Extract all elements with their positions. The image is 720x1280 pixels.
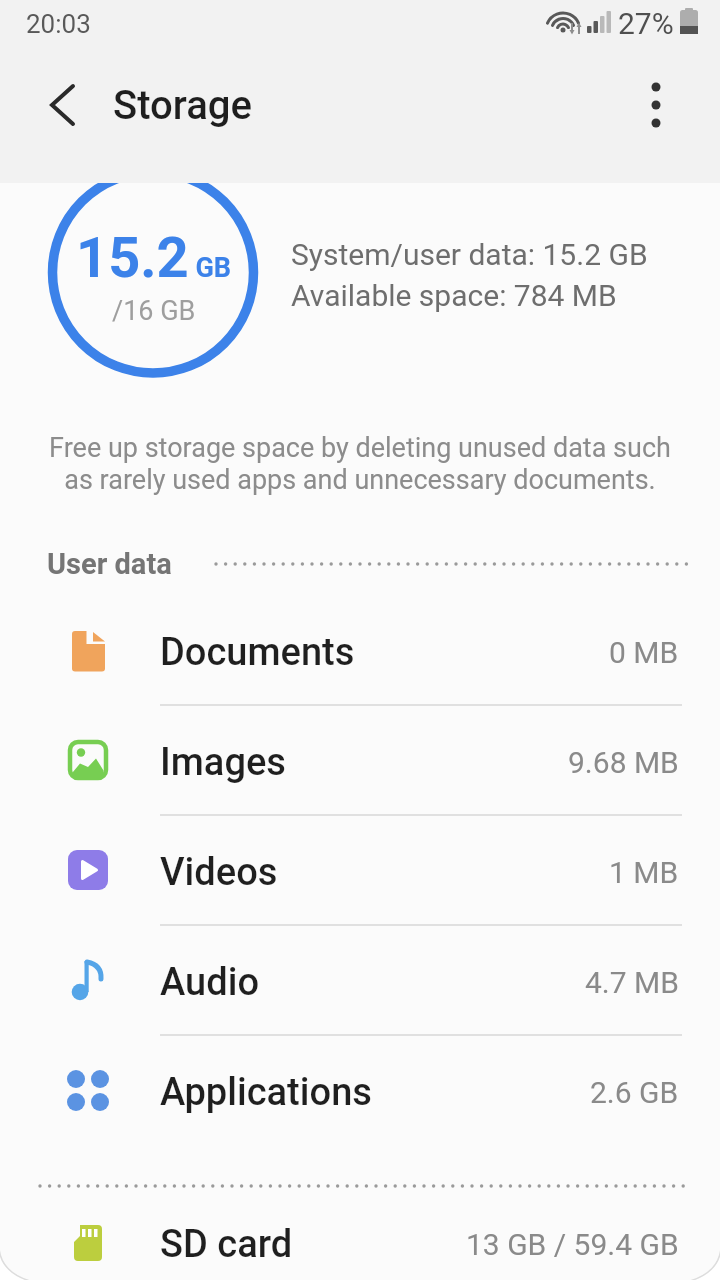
staticText: Free up storage space by deleting unused… [49, 432, 671, 495]
staticText: 0 MB [609, 635, 679, 670]
button[interactable] [0, 817, 720, 927]
button[interactable] [0, 597, 720, 707]
staticText: 2.6 GB [590, 1075, 679, 1110]
staticText: Documents [160, 630, 355, 675]
button[interactable] [0, 707, 720, 817]
staticText: 15.2 GB [76, 225, 232, 285]
staticText: 1 MB [609, 855, 679, 890]
staticText: Audio [160, 960, 260, 1005]
staticText: 4.7 MB [585, 965, 679, 1000]
button[interactable] [40, 76, 86, 134]
button[interactable] [0, 1189, 720, 1280]
staticText: System/user data: 15.2 GB [291, 237, 648, 272]
staticText: /16 GB [112, 295, 196, 327]
staticText: SD card [160, 1222, 293, 1267]
staticText: Applications [160, 1070, 372, 1115]
staticText: Images [160, 740, 286, 785]
staticText: 27% [618, 6, 674, 41]
staticText: User data [47, 547, 172, 581]
staticText: Storage [113, 82, 252, 129]
button[interactable] [0, 1037, 720, 1147]
button[interactable] [0, 927, 720, 1037]
staticText: 20:03 [26, 9, 91, 39]
staticText: Videos [160, 850, 278, 895]
staticText: Available space: 784 MB [291, 278, 617, 313]
staticText: 13 GB / 59.4 GB [466, 1227, 679, 1262]
staticText: 9.68 MB [568, 745, 679, 780]
button[interactable] [648, 84, 664, 126]
